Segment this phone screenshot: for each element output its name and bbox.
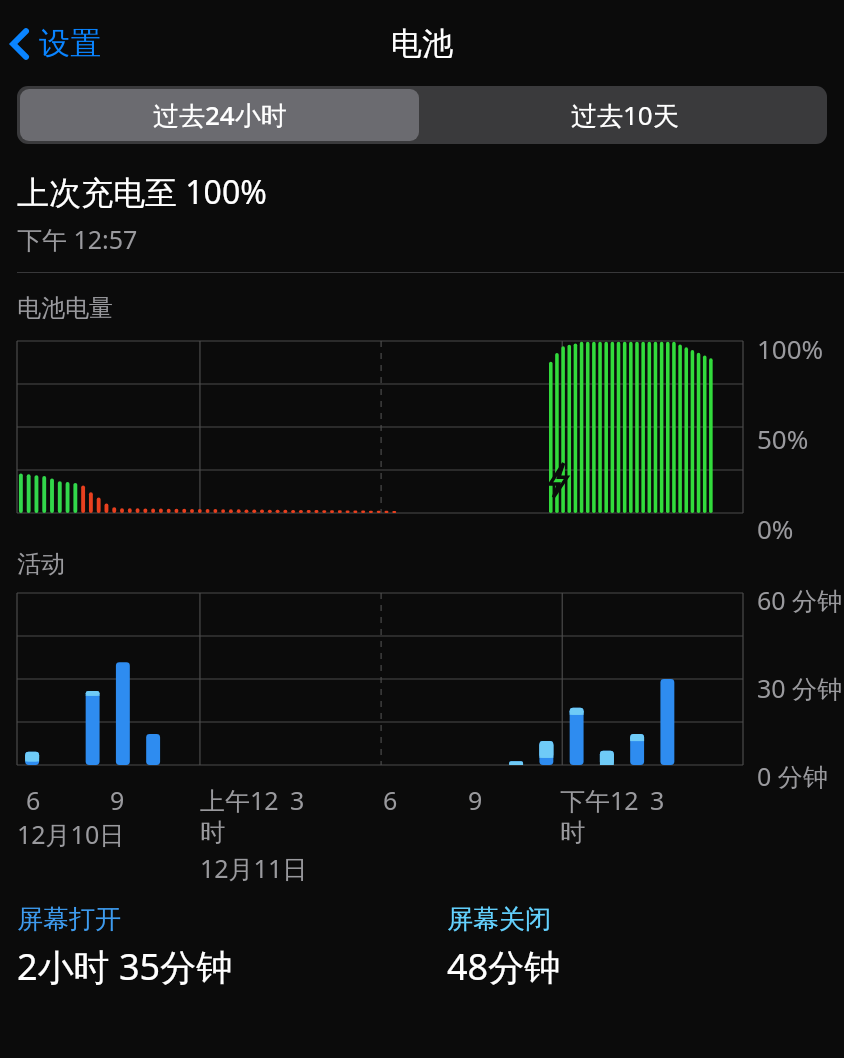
staticText: 下午12 [560, 783, 639, 817]
staticText: 时 [560, 817, 585, 848]
other: 返回设置 [10, 28, 30, 60]
staticText: 60 分钟 [757, 583, 843, 617]
button[interactable]: 返回设置 [0, 16, 115, 71]
button[interactable]: 过去10天 [422, 86, 827, 144]
staticText: 12月10日 [17, 817, 125, 851]
staticText: 上次充电至 100% [17, 170, 267, 214]
staticText: 3 [650, 783, 665, 817]
staticText: 电池 [391, 24, 453, 63]
staticText: 下午 12:57 [17, 222, 138, 256]
staticText: 过去24小时 [153, 97, 287, 133]
staticText: 9 [468, 783, 483, 817]
staticText: 活动 [17, 549, 65, 579]
staticText: 0% [757, 511, 794, 546]
staticText: 12月11日 [200, 851, 308, 885]
staticText: 屏幕打开 [17, 903, 121, 936]
button[interactable]: 过去24小时 [20, 89, 419, 141]
staticText: 6 [383, 783, 398, 817]
staticText: 30 分钟 [757, 671, 843, 705]
staticText: 9 [110, 783, 125, 817]
staticText: 100% [757, 331, 824, 366]
staticText: 时 [200, 817, 225, 848]
staticText: 设置 [39, 24, 101, 63]
staticText: 过去10天 [571, 97, 679, 133]
staticText: 3 [290, 783, 305, 817]
staticText: 电池电量 [17, 293, 113, 323]
staticText: 屏幕关闭 [447, 903, 551, 936]
button[interactable]: 屏幕打开 [17, 903, 447, 991]
staticText: 2小时 35分钟 [17, 942, 233, 991]
staticText: 50% [757, 421, 809, 456]
staticText: 0 分钟 [757, 759, 828, 793]
staticText: 48分钟 [447, 942, 561, 991]
staticText: 上午12 [200, 783, 279, 817]
staticText: 6 [26, 783, 41, 817]
button[interactable]: 屏幕关闭 [447, 903, 561, 991]
